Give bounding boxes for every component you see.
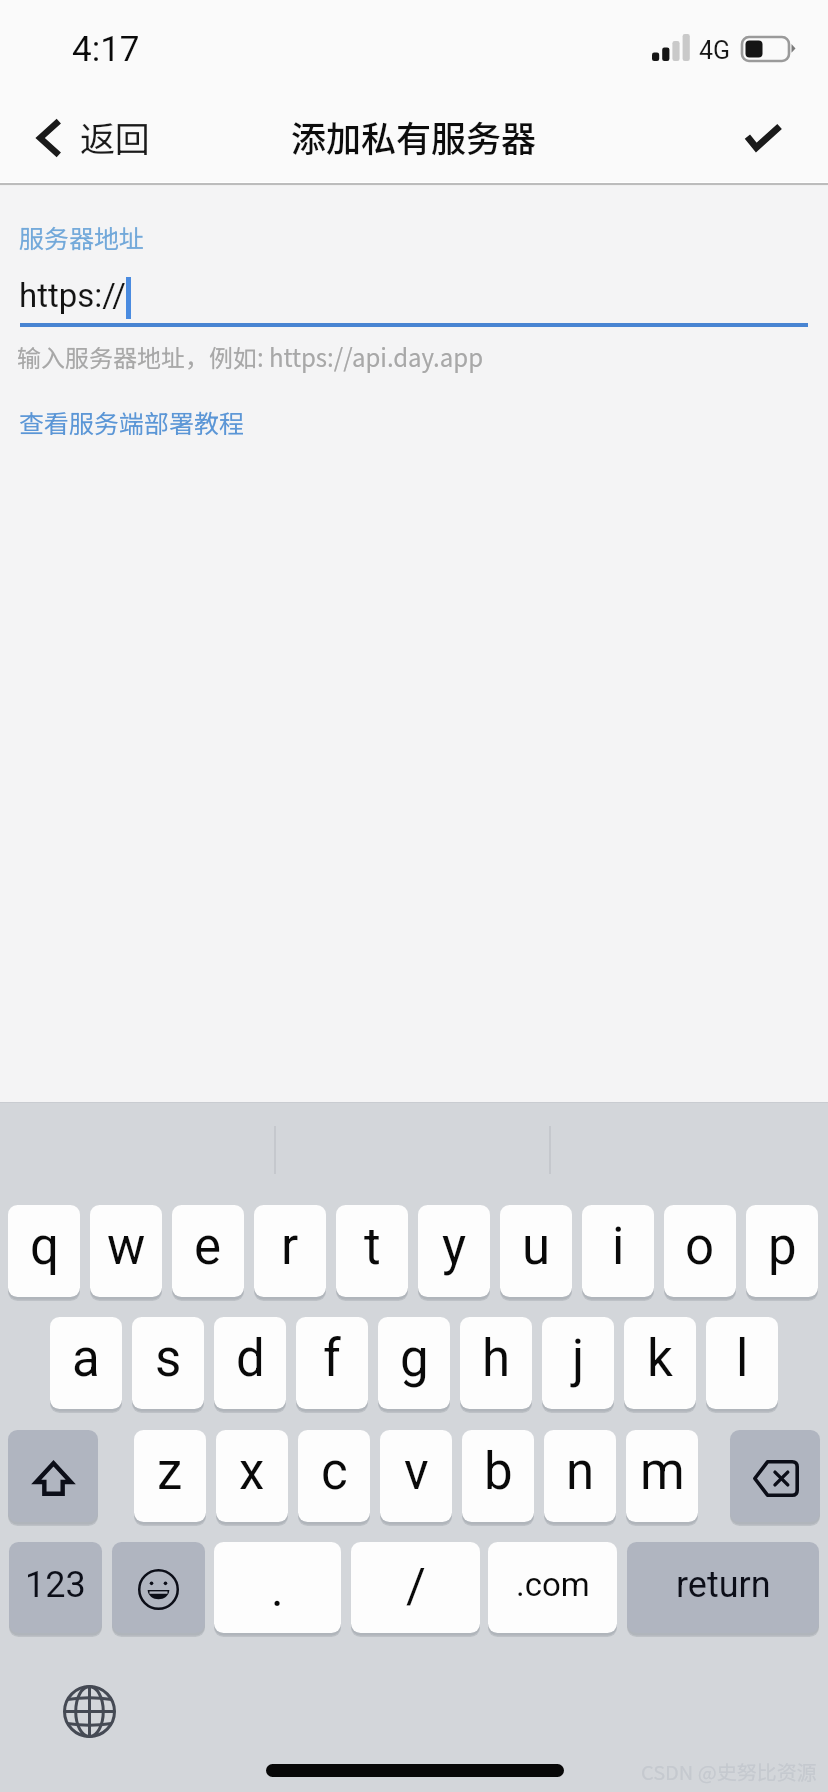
- staticText: h: [482, 1329, 511, 1389]
- staticText: return: [676, 1564, 771, 1606]
- staticText: y: [442, 1217, 467, 1277]
- button[interactable]: Backspace: [730, 1430, 820, 1526]
- staticText: m: [640, 1442, 685, 1502]
- button[interactable]: 123: [9, 1542, 102, 1637]
- staticText: i: [612, 1217, 625, 1277]
- button[interactable]: s: [132, 1317, 204, 1413]
- staticText: q: [30, 1217, 59, 1277]
- button[interactable]: u: [500, 1205, 572, 1301]
- staticText: k: [647, 1329, 673, 1389]
- button[interactable]: d: [214, 1317, 286, 1413]
- staticText: r: [281, 1217, 299, 1277]
- button[interactable]: c: [298, 1430, 370, 1526]
- button[interactable]: a: [50, 1317, 122, 1413]
- button[interactable]: j: [542, 1317, 614, 1413]
- staticText: f: [323, 1329, 341, 1389]
- button[interactable]: w: [90, 1205, 162, 1301]
- button[interactable]: f: [296, 1317, 368, 1413]
- staticText: a: [72, 1329, 100, 1389]
- staticText: t: [364, 1217, 381, 1277]
- button[interactable]: .com: [488, 1542, 617, 1637]
- button[interactable]: Emoji: [112, 1542, 205, 1637]
- button[interactable]: g: [378, 1317, 450, 1413]
- staticText: 服务器地址: [19, 219, 145, 255]
- staticText: p: [768, 1217, 797, 1277]
- button[interactable]: r: [254, 1205, 326, 1301]
- staticText: j: [572, 1329, 585, 1389]
- staticText: v: [404, 1442, 429, 1502]
- staticText: z: [157, 1442, 183, 1502]
- button[interactable]: e: [172, 1205, 244, 1301]
- staticText: d: [236, 1329, 265, 1389]
- button[interactable]: 查看服务端部署教程: [7, 398, 257, 446]
- staticText: /: [406, 1557, 426, 1613]
- staticText: 添加私有服务器: [291, 111, 537, 162]
- staticText: x: [239, 1442, 265, 1502]
- staticText: 4:17: [72, 29, 140, 70]
- staticText: s: [155, 1329, 182, 1389]
- staticText: g: [400, 1329, 429, 1389]
- button[interactable]: l: [706, 1317, 778, 1413]
- button[interactable]: p: [746, 1205, 818, 1301]
- staticText: 123: [25, 1564, 86, 1606]
- staticText: w: [107, 1217, 146, 1277]
- staticText: n: [566, 1442, 595, 1502]
- button[interactable]: .: [214, 1542, 341, 1637]
- staticText: c: [321, 1442, 348, 1502]
- button[interactable]: h: [460, 1317, 532, 1413]
- button[interactable]: q: [8, 1205, 80, 1301]
- button[interactable]: return: [627, 1542, 819, 1637]
- button[interactable]: o: [664, 1205, 736, 1301]
- staticText: b: [484, 1442, 513, 1502]
- button[interactable]: m: [626, 1430, 698, 1526]
- staticText: o: [685, 1217, 715, 1277]
- staticText: .com: [516, 1565, 590, 1604]
- staticText: e: [194, 1217, 222, 1277]
- button[interactable]: x: [216, 1430, 288, 1526]
- staticText: 返回: [80, 111, 151, 162]
- button[interactable]: Shift: [8, 1430, 98, 1526]
- button[interactable]: k: [624, 1317, 696, 1413]
- button[interactable]: b: [462, 1430, 534, 1526]
- staticText: 查看服务端部署教程: [19, 404, 245, 440]
- staticText: u: [522, 1217, 551, 1277]
- button[interactable]: i: [582, 1205, 654, 1301]
- staticText: https://: [19, 276, 126, 315]
- button[interactable]: v: [380, 1430, 452, 1526]
- button[interactable]: y: [418, 1205, 490, 1301]
- staticText: 输入服务器地址，例如: https://api.day.app: [17, 339, 484, 374]
- button[interactable]: Confirm: [720, 101, 828, 173]
- button[interactable]: 返回: [0, 98, 171, 177]
- button[interactable]: /: [351, 1542, 480, 1637]
- button[interactable]: t: [336, 1205, 408, 1301]
- staticText: .: [271, 1561, 284, 1617]
- button[interactable]: z: [134, 1430, 206, 1526]
- staticText: 4G: [699, 36, 731, 65]
- button[interactable]: n: [544, 1430, 616, 1526]
- button[interactable]: Switch keyboard: [57, 1679, 121, 1743]
- staticText: CSDN @史努比资源: [641, 1757, 817, 1786]
- staticText: l: [736, 1329, 749, 1389]
